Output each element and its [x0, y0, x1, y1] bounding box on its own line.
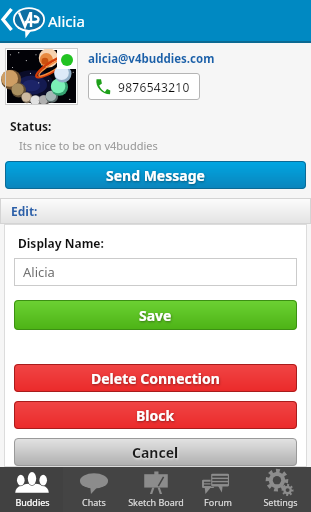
staticText: Chats [82, 496, 106, 508]
button[interactable]: Cancel [14, 438, 297, 466]
button[interactable]: Send Message [5, 161, 306, 189]
staticText: Edit: [11, 203, 38, 219]
button[interactable]: Chats [63, 467, 125, 512]
button[interactable]: 9876543210 [88, 73, 200, 100]
staticText: Send Message [106, 166, 205, 185]
staticText: Buddies [15, 496, 50, 508]
staticText: 9876543210 [118, 79, 190, 95]
staticText: Status: [10, 118, 52, 134]
staticText: Alicia [23, 263, 55, 281]
staticText: Block [136, 406, 175, 425]
button[interactable]: Buddies [0, 467, 63, 512]
staticText: Sketch Board [128, 496, 184, 508]
button[interactable]: Settings [249, 467, 311, 512]
button[interactable]: Forum [187, 467, 249, 512]
button[interactable]: Delete Connection [14, 364, 297, 392]
staticText: Display Name: [18, 235, 104, 251]
staticText: Alicia [48, 11, 85, 31]
button[interactable]: Alicia [14, 258, 297, 286]
button[interactable]: Save [14, 300, 297, 330]
staticText: Settings [263, 496, 298, 508]
staticText: Delete Connection [91, 369, 220, 388]
staticText: Its nice to be on v4buddies [19, 138, 158, 153]
button[interactable]: Block [14, 401, 297, 429]
staticText: alicia@v4buddies.com [88, 51, 215, 67]
button[interactable]: Sketch Board [125, 467, 187, 512]
staticText: Cancel [132, 443, 179, 462]
staticText: Save [139, 306, 172, 325]
staticText: Forum [204, 496, 232, 508]
button[interactable]: Back [0, 0, 48, 41]
